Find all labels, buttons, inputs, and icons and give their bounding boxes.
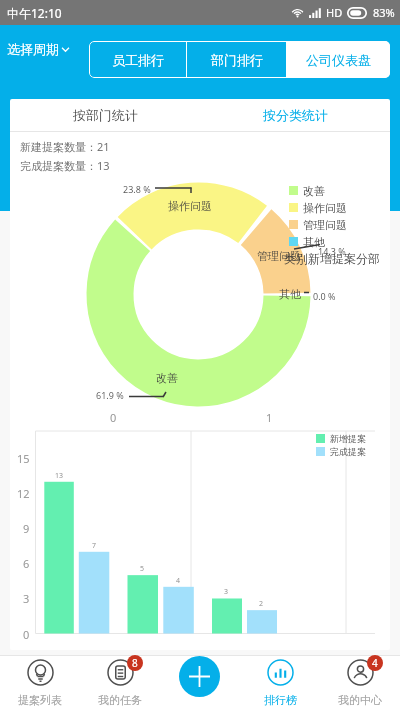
staticText: 完成提案 [330,446,366,457]
staticText: 新建提案数量：21 [20,139,110,154]
staticText: 15 [17,451,30,466]
staticText: 61.9 % [96,389,124,401]
staticText: 4 [176,576,181,586]
staticText: 按分类统计 [263,107,328,123]
staticText: 中午12:10 [7,5,62,21]
staticText: 我的任务 [98,693,142,707]
staticText: 部门排行 [211,52,263,68]
staticText: HD [326,5,343,20]
staticText: 公司仪表盘 [306,52,371,68]
staticText: 我的中心 [338,693,382,707]
staticText: 0.0 % [313,290,336,302]
staticText: 提案列表 [18,693,62,707]
button[interactable]: 选择周期 [0,34,74,64]
button[interactable]: 提案列表 [0,655,80,711]
staticText: 8 [132,656,138,670]
staticText: 9 [23,521,30,536]
button[interactable]: 8 [80,655,160,711]
button[interactable]: 按分类统计 [200,99,390,131]
staticText: 完成提案数量：13 [20,158,110,173]
staticText: 23.8 % [123,183,151,195]
staticText: 4 [372,656,378,670]
staticText: 6 [23,556,30,571]
staticText: 7 [92,541,97,551]
button[interactable]: 公司仪表盘 [287,41,390,78]
staticText: 14.3 % [318,245,346,257]
staticText: 操作问题 [168,199,212,213]
button[interactable]: 员工排行 [89,41,186,78]
staticText: 2 [259,599,264,609]
button[interactable]: 4 [320,655,400,711]
staticText: 员工排行 [112,52,164,68]
button[interactable]: 排行榜 [240,655,320,711]
staticText: 选择周期 [7,41,59,57]
button[interactable]: 按部门统计 [10,99,200,131]
staticText: 13 [55,471,64,481]
staticText: 0 [23,627,30,642]
staticText: 改善 [303,184,325,198]
staticText: 5 [140,564,145,574]
staticText: 其他 [279,287,301,301]
staticText: 83% [373,5,395,20]
button[interactable]: 新增提案 [179,656,220,697]
staticText: 3 [23,591,30,606]
staticText: 按部门统计 [73,107,138,123]
staticText: 改善 [156,371,178,385]
staticText: 其他 [303,235,325,249]
staticText: 排行榜 [264,693,297,707]
staticText: 管理问题 [257,249,301,263]
staticText: 3 [224,587,229,597]
staticText: 管理问题 [303,218,347,232]
staticText: 操作问题 [303,201,347,215]
staticText: 12 [17,486,30,501]
button[interactable]: 部门排行 [187,41,286,78]
staticText: 1 [266,410,273,425]
staticText: 类别新增提案分部 [284,251,380,266]
staticText: 新增提案 [330,433,366,444]
staticText: 0 [110,410,117,425]
